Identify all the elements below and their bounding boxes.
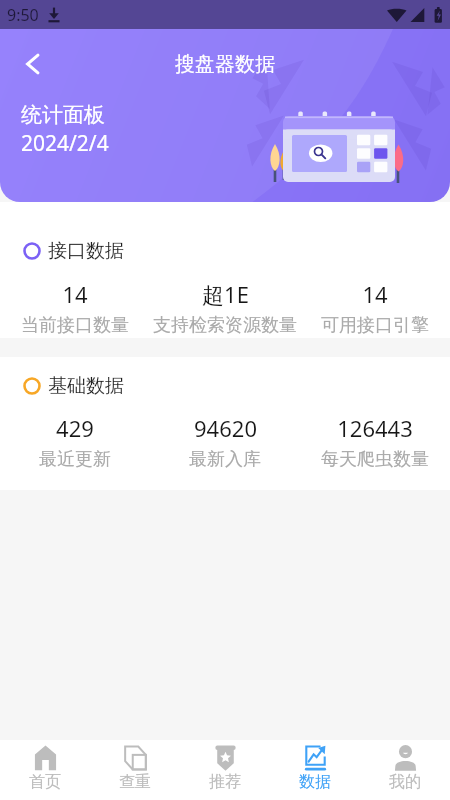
staticText: 94620 [194, 413, 257, 443]
staticText: 接口数据 [48, 239, 124, 263]
staticText: 数据 [299, 772, 331, 791]
staticText: 我的 [389, 772, 421, 791]
staticText: 基础数据 [48, 374, 124, 398]
staticText: 9:50 [7, 4, 39, 26]
staticText: 支持检索资源数量 [153, 314, 297, 337]
staticText: 2024/2/4 [21, 129, 109, 158]
staticText: 查重 [119, 772, 151, 791]
staticText: 最新入库 [189, 448, 261, 471]
staticText: 126443 [337, 413, 413, 443]
staticText: 搜盘器数据 [175, 52, 275, 77]
staticText: 每天爬虫数量 [321, 448, 429, 471]
staticText: 最近更新 [39, 448, 111, 471]
staticText: 首页 [29, 772, 61, 791]
button[interactable]: 推荐 [180, 740, 270, 800]
staticText: 可用接口引擎 [321, 314, 429, 337]
button[interactable]: 查重 [90, 740, 180, 800]
staticText: 统计面板 [21, 102, 105, 128]
button[interactable]: 数据 [270, 740, 360, 800]
staticText: 超1E [202, 279, 249, 309]
staticText: 429 [56, 413, 94, 443]
staticText: 推荐 [209, 772, 241, 791]
staticText: 14 [62, 279, 88, 309]
button[interactable]: 我的 [360, 740, 450, 800]
staticText: 14 [362, 279, 388, 309]
staticText: 当前接口数量 [21, 314, 129, 337]
button[interactable]: 首页 [0, 740, 90, 800]
button[interactable]: Back [14, 46, 50, 82]
